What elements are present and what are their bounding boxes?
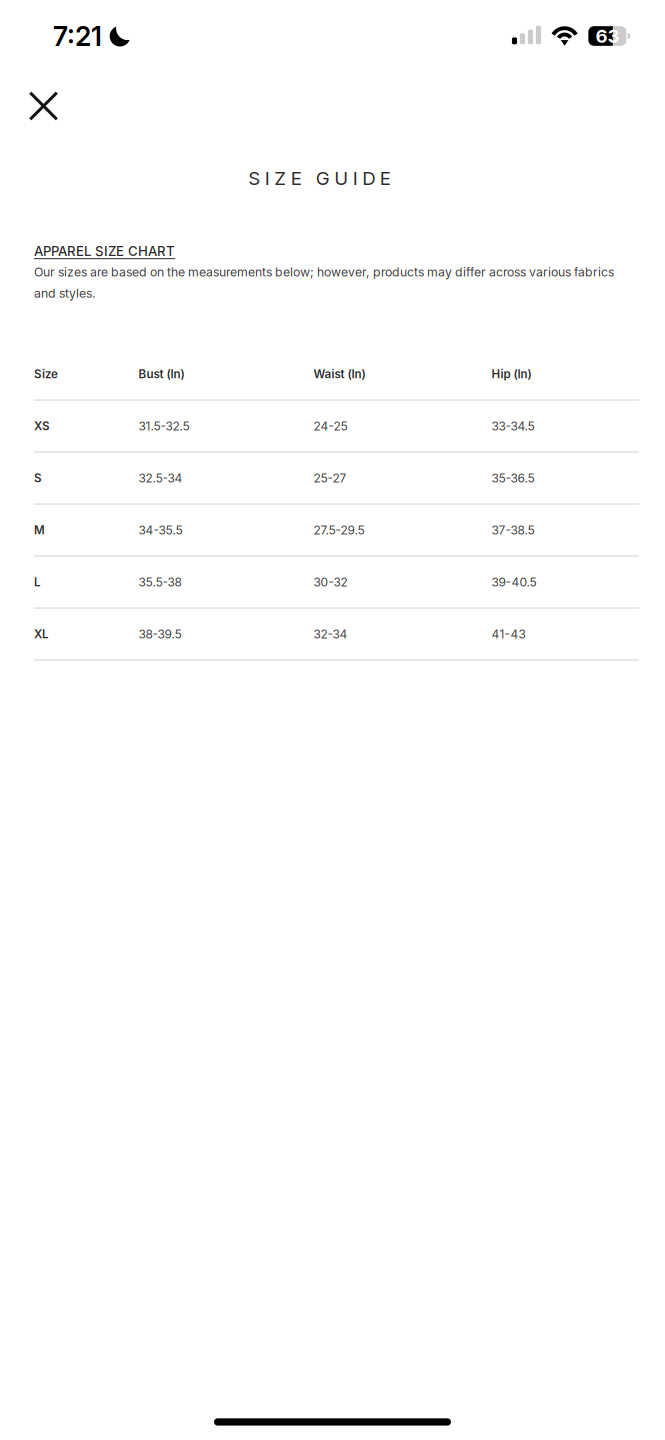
staticText: 35.5-38 [138,575,181,589]
staticText: 39-40.5 [491,575,536,589]
staticText: 24-25 [313,419,347,433]
staticText: M [34,523,45,537]
staticText: S [34,471,42,485]
staticText: XL [34,627,49,641]
staticText: 35-36.5 [491,471,534,485]
staticText: 25-27 [313,471,346,485]
staticText: 37-38.5 [491,523,534,537]
staticText: 32.5-34 [138,471,182,485]
staticText: Waist (In) [313,367,365,381]
staticText: XS [34,419,50,433]
staticText: 31.5-32.5 [138,419,189,433]
staticText: 27.5-29.5 [313,523,364,537]
button[interactable]: Close [12,74,75,137]
staticText: Size [34,367,58,381]
staticText: 63 [595,25,619,47]
staticText: 32-34 [313,627,347,641]
staticText: 34-35.5 [138,523,182,537]
staticText: L [34,575,41,589]
staticText: Bust (In) [138,367,184,381]
staticText: SIZE GUIDE [248,167,391,190]
staticText: 38-39.5 [138,627,181,641]
staticText: Our sizes are based on the measurements … [34,265,614,301]
staticText: 7:21 [53,20,102,52]
staticText: APPAREL SIZE CHART [34,243,175,259]
staticText: 41-43 [491,627,525,641]
staticText: Hip (In) [491,367,531,381]
staticText: 30-32 [313,575,347,589]
staticText: 33-34.5 [491,419,534,433]
